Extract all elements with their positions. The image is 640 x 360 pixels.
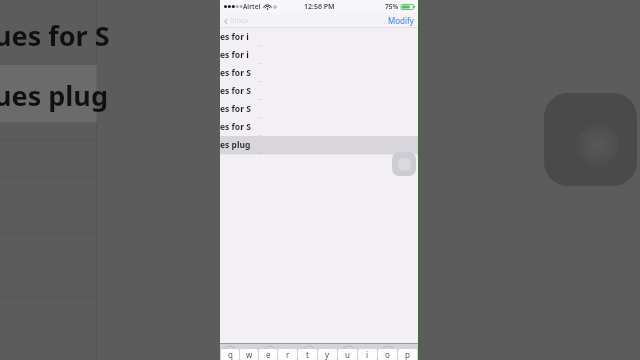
staticText: Modify (388, 15, 414, 26)
button[interactable]: es for i (220, 28, 418, 46)
staticText: es for S (220, 103, 251, 115)
button[interactable]: p (398, 349, 417, 360)
staticText: o (385, 349, 390, 360)
staticText: es for S (220, 85, 251, 97)
staticText: u (345, 349, 350, 360)
button[interactable]: es for i (220, 46, 418, 64)
button[interactable]: Inbox (223, 14, 250, 28)
button[interactable]: q (221, 349, 239, 360)
staticText: p (405, 349, 410, 360)
staticText: 75% (385, 2, 399, 11)
button[interactable]: es for S (220, 100, 418, 118)
button[interactable]: Modify (384, 13, 418, 28)
button[interactable]: es for S (220, 64, 418, 82)
staticText: i (366, 349, 369, 360)
staticText: es for S (220, 121, 251, 133)
staticText: t (306, 349, 309, 360)
button[interactable]: i (358, 349, 377, 360)
staticText: r (286, 349, 290, 360)
staticText: es for S (220, 67, 251, 79)
staticText: es plug (220, 139, 251, 151)
staticText: es for i (220, 49, 249, 61)
staticText: ues plug (0, 77, 108, 114)
staticText: w (246, 349, 253, 360)
staticText: ues for S (0, 17, 110, 54)
button[interactable]: es for S (220, 82, 418, 100)
staticText: e (266, 349, 271, 360)
button[interactable]: es for S (220, 118, 418, 136)
button[interactable]: y (318, 349, 337, 360)
button[interactable]: o (378, 349, 397, 360)
button[interactable]: t (298, 349, 317, 360)
staticText: q (228, 349, 233, 360)
button[interactable]: Scroll handle (392, 152, 416, 176)
staticText: y (325, 349, 330, 360)
staticText: 12:56 PM (304, 2, 335, 12)
button[interactable]: es plug (220, 136, 418, 154)
staticText: es for i (220, 31, 249, 43)
button[interactable]: w (240, 349, 258, 360)
button[interactable]: e (259, 349, 277, 360)
staticText: Airtel (243, 2, 261, 11)
button[interactable]: u (338, 349, 357, 360)
staticText: Inbox (230, 16, 249, 26)
button[interactable]: App icon (544, 93, 637, 186)
button[interactable]: r (278, 349, 297, 360)
